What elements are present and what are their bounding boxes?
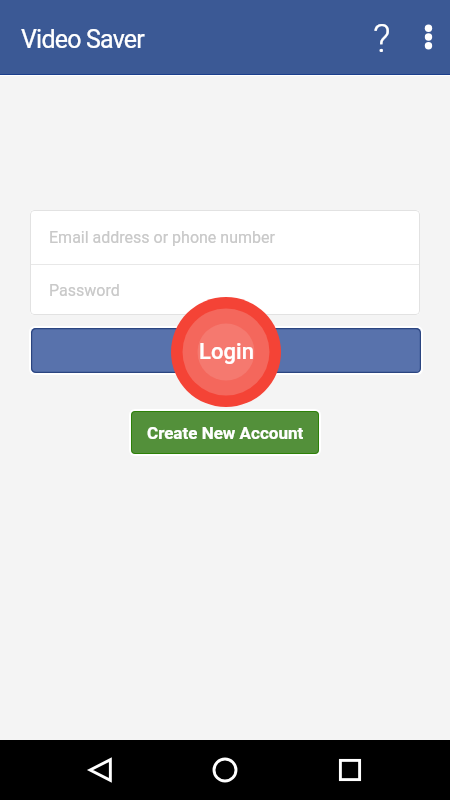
button[interactable] — [29, 326, 423, 375]
button[interactable]: Create New Account — [129, 409, 321, 456]
button[interactable]: Password — [30, 265, 420, 315]
staticText: Create New Account — [147, 423, 304, 443]
staticText: Video Saver — [21, 25, 144, 54]
button[interactable]: Back — [77, 746, 125, 794]
staticText: Password — [49, 281, 120, 300]
button[interactable]: More options — [406, 13, 450, 61]
button[interactable]: Email address or phone number — [30, 210, 420, 264]
staticText: Login — [199, 339, 254, 365]
staticText: ? — [373, 16, 391, 61]
button[interactable]: Recents — [326, 746, 374, 794]
button[interactable]: Home — [201, 746, 249, 794]
staticText: Email address or phone number — [49, 228, 275, 247]
button[interactable]: Help — [358, 13, 406, 61]
